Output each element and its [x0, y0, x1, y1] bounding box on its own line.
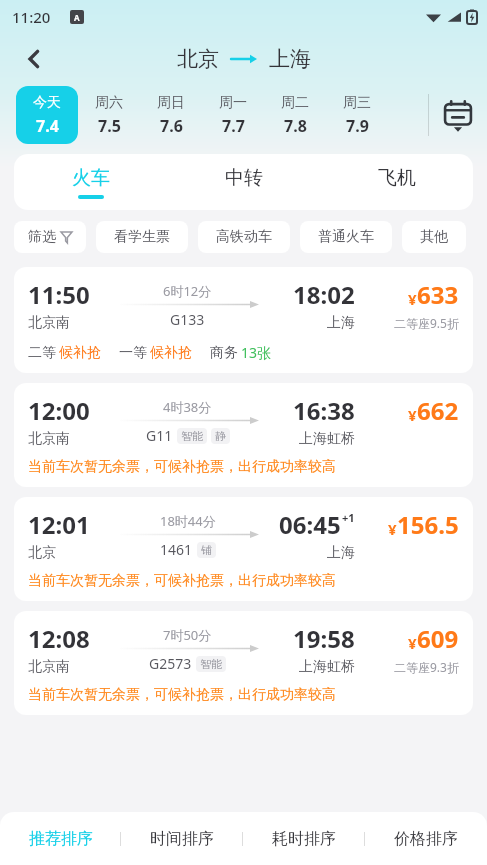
staticText: 北京南: [28, 430, 70, 448]
staticText: 11:50: [28, 278, 90, 311]
staticText: 智能: [200, 657, 222, 671]
staticText: 上海虹桥: [299, 658, 355, 676]
button[interactable]: 周六: [78, 86, 140, 144]
staticText: 上海: [327, 544, 355, 562]
button[interactable]: 高铁动车: [198, 221, 290, 253]
staticText: 633: [417, 278, 459, 311]
button[interactable]: 筛选: [14, 221, 86, 253]
staticText: 当前车次暂无余票，可候补抢票，出行成功率较高: [28, 572, 336, 590]
staticText: 7.5: [98, 115, 121, 137]
button[interactable]: 12:08: [14, 611, 473, 715]
staticText: 北京南: [28, 658, 70, 676]
staticText: 4时38分: [163, 398, 212, 416]
button[interactable]: Back: [12, 37, 56, 81]
button[interactable]: 今天: [16, 86, 78, 144]
staticText: 北京: [28, 544, 56, 562]
button[interactable]: 火车: [14, 154, 167, 210]
staticText: 今天: [33, 94, 61, 112]
staticText: 一等: [119, 344, 147, 362]
staticText: 18:02: [293, 278, 355, 311]
button[interactable]: 周三: [326, 86, 388, 144]
staticText: 铺: [201, 543, 212, 557]
button[interactable]: 耗时排序: [243, 812, 365, 865]
staticText: +1: [342, 510, 355, 525]
button[interactable]: 12:01: [14, 497, 473, 601]
staticText: G133: [170, 310, 205, 329]
staticText: 19:58: [293, 622, 355, 655]
staticText: G2573: [149, 654, 192, 673]
staticText: G11: [146, 426, 173, 445]
staticText: 06:45: [279, 508, 341, 541]
staticText: 12:00: [28, 394, 90, 427]
button[interactable]: 飞机: [320, 154, 473, 210]
staticText: 662: [417, 394, 459, 427]
staticText: 上海: [327, 314, 355, 332]
staticText: 其他: [420, 228, 448, 246]
staticText: ¥: [408, 405, 417, 425]
staticText: 周二: [281, 94, 309, 112]
staticText: 11:20: [12, 7, 51, 27]
staticText: 周六: [95, 94, 123, 112]
staticText: 普通火车: [318, 228, 374, 246]
staticText: 火车: [72, 166, 110, 190]
staticText: 二等座9.5折: [394, 315, 459, 331]
staticText: 静: [215, 429, 226, 443]
staticText: 7时50分: [163, 626, 212, 644]
staticText: 当前车次暂无余票，可候补抢票，出行成功率较高: [28, 458, 336, 476]
staticText: 7.7: [222, 115, 245, 137]
staticText: 上海虹桥: [299, 430, 355, 448]
button[interactable]: 推荐排序: [0, 812, 121, 865]
staticText: 北京: [177, 46, 219, 72]
staticText: 高铁动车: [216, 228, 272, 246]
staticText: 1461: [160, 540, 193, 559]
button[interactable]: Calendar: [429, 86, 487, 144]
staticText: 16:38: [293, 394, 355, 427]
staticText: 飞机: [378, 166, 416, 190]
staticText: 价格排序: [394, 829, 458, 849]
staticText: 7.4: [36, 115, 59, 137]
staticText: 18时44分: [160, 512, 216, 530]
staticText: 12:01: [28, 508, 90, 541]
staticText: ¥: [388, 519, 397, 539]
staticText: 当前车次暂无余票，可候补抢票，出行成功率较高: [28, 686, 336, 704]
staticText: 推荐排序: [29, 829, 93, 849]
staticText: 609: [417, 622, 459, 655]
staticText: 耗时排序: [272, 829, 336, 849]
staticText: 北京南: [28, 314, 70, 332]
staticText: 7.9: [346, 115, 369, 137]
staticText: 候补抢: [59, 344, 101, 362]
staticText: 时间排序: [150, 829, 214, 849]
staticText: ¥: [408, 289, 417, 309]
staticText: 中转: [225, 166, 263, 190]
staticText: 6时12分: [163, 282, 212, 300]
staticText: 筛选: [28, 228, 56, 246]
button[interactable]: 看学生票: [96, 221, 188, 253]
button[interactable]: 11:50: [14, 267, 473, 373]
staticText: 12:08: [28, 622, 90, 655]
button[interactable]: 周二: [264, 86, 326, 144]
staticText: ¥: [408, 633, 417, 653]
staticText: 7.8: [284, 115, 307, 137]
button[interactable]: 周一: [202, 86, 264, 144]
staticText: 二等: [28, 344, 56, 362]
staticText: 周日: [157, 94, 185, 112]
button[interactable]: 周日: [140, 86, 202, 144]
staticText: 看学生票: [114, 228, 170, 246]
staticText: 7.6: [160, 115, 183, 137]
button[interactable]: 普通火车: [300, 221, 392, 253]
staticText: 商务: [210, 344, 238, 362]
staticText: 周三: [343, 94, 371, 112]
staticText: 二等座9.3折: [394, 659, 459, 675]
staticText: 周一: [219, 94, 247, 112]
staticText: 智能: [181, 429, 203, 443]
button[interactable]: 时间排序: [121, 812, 243, 865]
button[interactable]: 价格排序: [365, 812, 487, 865]
staticText: 候补抢: [150, 344, 192, 362]
button[interactable]: 12:00: [14, 383, 473, 487]
staticText: 156.5: [397, 508, 459, 541]
button[interactable]: 其他: [402, 221, 466, 253]
staticText: A: [74, 12, 80, 23]
staticText: 上海: [269, 46, 311, 72]
button[interactable]: 中转: [167, 154, 320, 210]
staticText: 13张: [241, 343, 272, 362]
